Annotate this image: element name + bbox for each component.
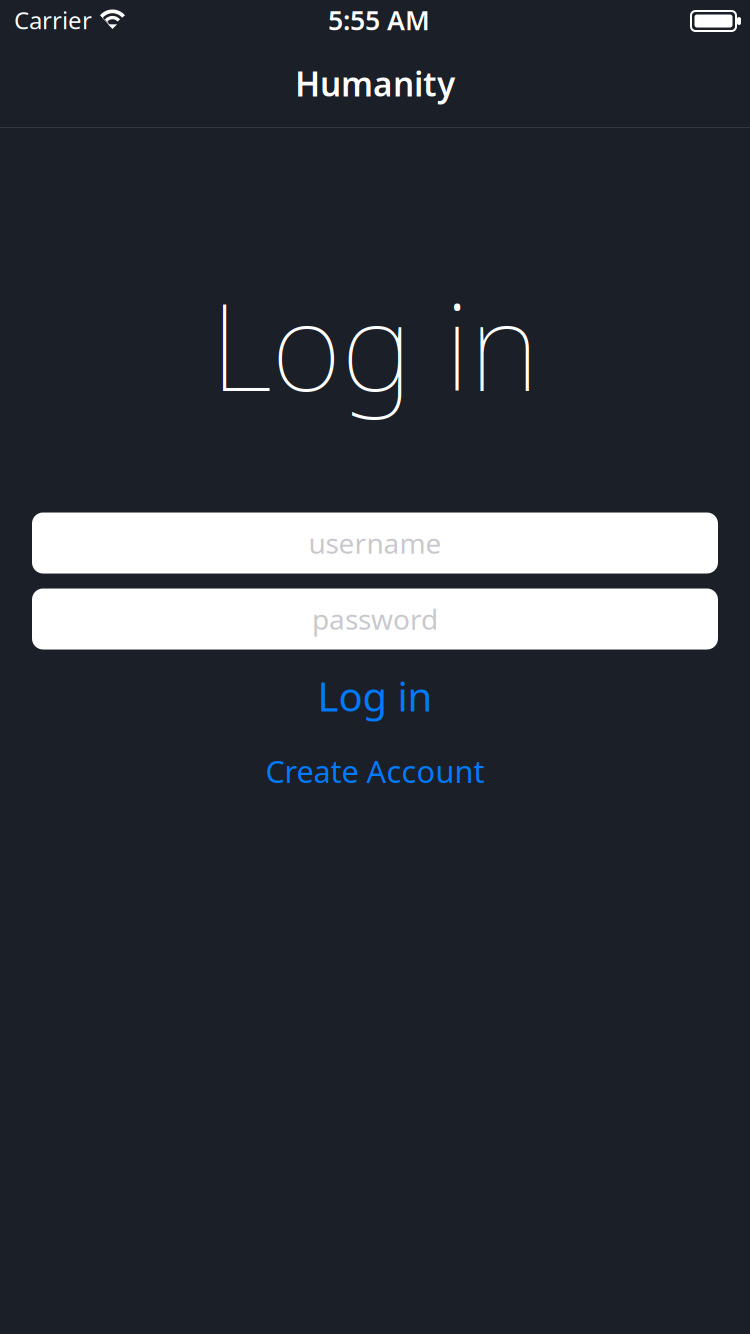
button[interactable]: Log in [255,665,495,727]
staticText: Humanity [295,61,455,106]
staticText: password [312,600,438,638]
button[interactable]: Create Account [225,745,525,797]
button[interactable]: username [32,512,718,573]
staticText: 5:55 AM [328,2,430,38]
staticText: username [308,524,441,562]
staticText: Log in [317,669,432,722]
staticText: Carrier [14,4,92,36]
staticText: Create Account [265,751,484,791]
staticText: Log in [210,263,539,424]
button[interactable]: password [32,588,718,649]
